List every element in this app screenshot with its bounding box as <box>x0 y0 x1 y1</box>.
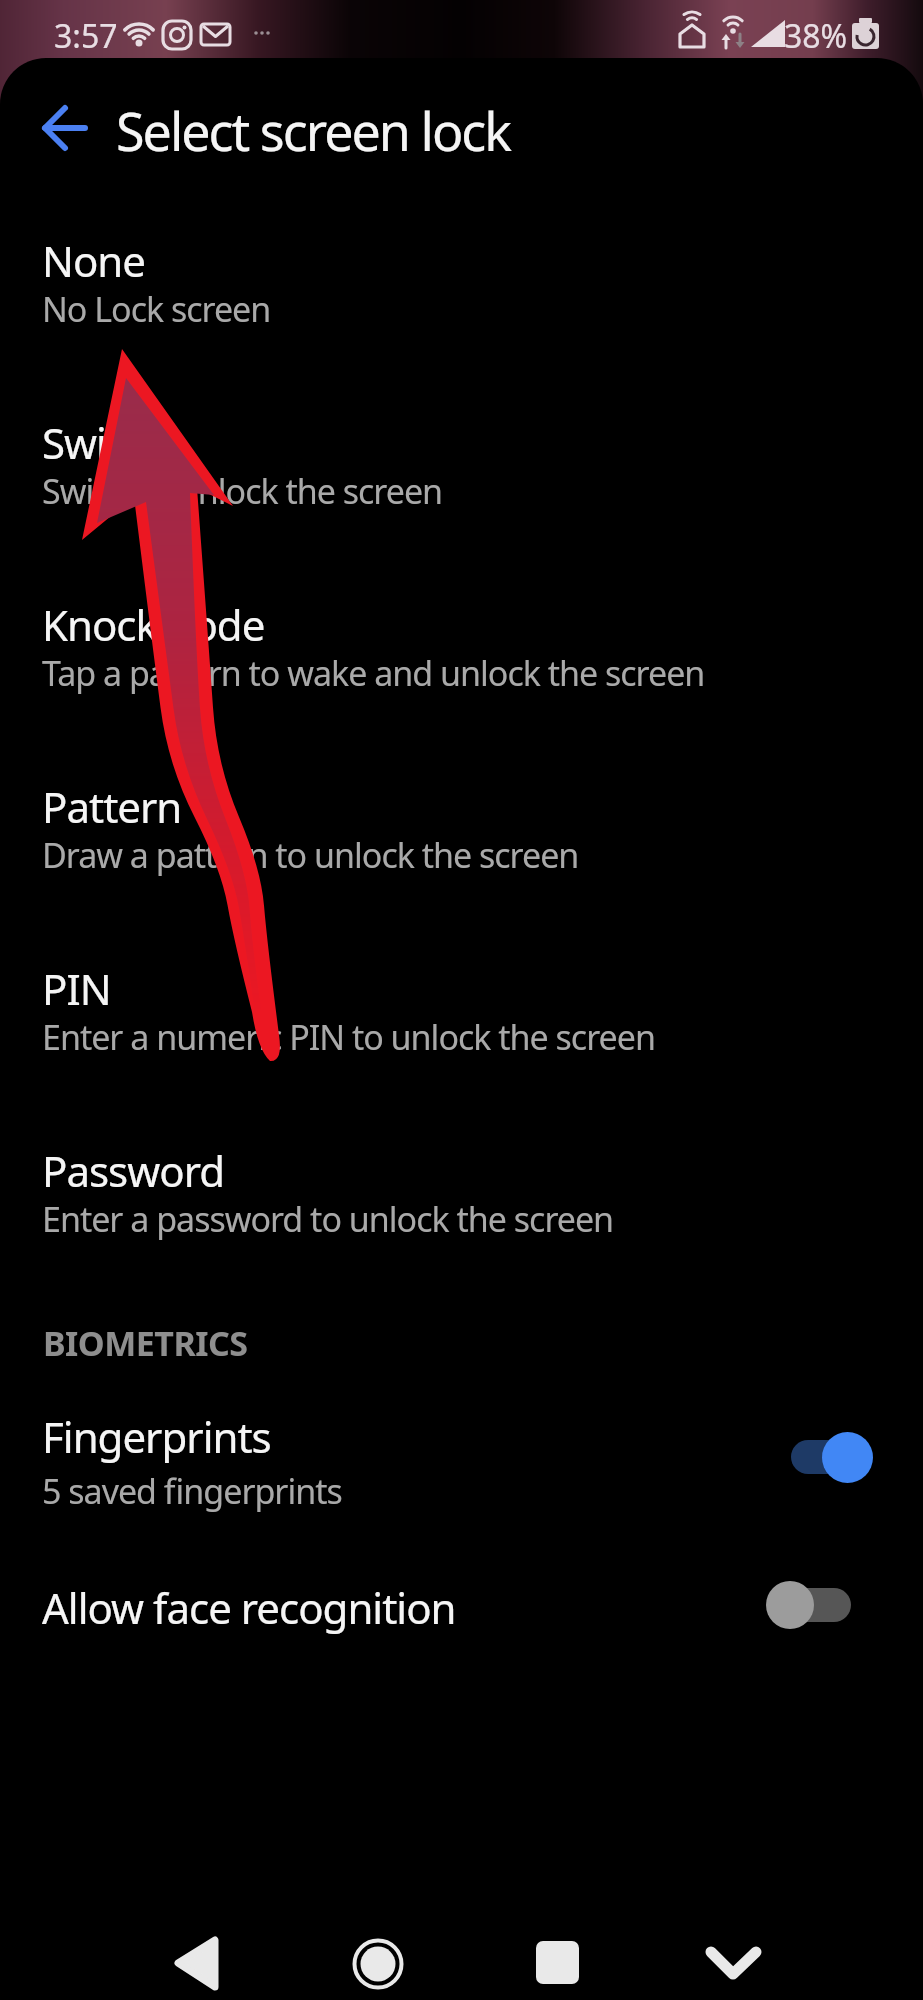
button[interactable]: Fingerprints <box>0 1380 923 1540</box>
staticText: 5 saved fingerprints <box>42 1468 342 1514</box>
staticText: Fingerprints <box>42 1408 271 1465</box>
button[interactable]: Swipe <box>0 386 923 568</box>
staticText: 38% <box>784 14 848 58</box>
button[interactable]: Allow face recognition <box>0 1560 923 1680</box>
button[interactable]: PIN <box>0 932 923 1114</box>
button[interactable] <box>28 96 94 160</box>
button[interactable] <box>517 1900 597 1980</box>
staticText: Draw a pattern to unlock the screen <box>42 832 579 878</box>
staticText: Password <box>42 1142 224 1199</box>
button[interactable]: Password <box>0 1114 923 1296</box>
staticText: BIOMETRICS <box>43 1320 248 1366</box>
staticText: Tap a pattern to wake and unlock the scr… <box>42 650 705 696</box>
button[interactable]: Knock Code <box>0 568 923 750</box>
staticText: Swipe <box>42 414 154 471</box>
staticText: PIN <box>42 960 111 1017</box>
staticText: Pattern <box>42 778 182 835</box>
staticText: Select screen lock <box>116 95 511 166</box>
staticText: Swipe to unlock the screen <box>42 468 443 514</box>
staticText: Enter a password to unlock the screen <box>42 1196 614 1242</box>
button[interactable]: None <box>0 204 923 386</box>
button[interactable] <box>338 1900 418 1980</box>
button[interactable] <box>160 1900 240 1980</box>
button[interactable]: Pattern <box>0 750 923 932</box>
staticText: 3:57 <box>54 14 118 58</box>
button[interactable] <box>693 1900 773 1980</box>
staticText: Knock Code <box>42 596 265 653</box>
staticText: None <box>42 232 145 289</box>
staticText: No Lock screen <box>42 286 271 332</box>
staticText: Enter a numeric PIN to unlock the screen <box>42 1014 655 1060</box>
staticText: Allow face recognition <box>42 1579 456 1636</box>
